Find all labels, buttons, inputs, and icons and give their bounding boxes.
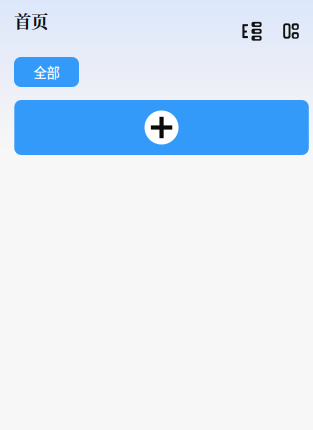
button[interactable]: Grid view (276, 16, 306, 46)
button[interactable] (14, 100, 309, 155)
button[interactable]: 全部 (14, 57, 79, 87)
staticText: 全部 (33, 62, 59, 82)
button[interactable]: Outline view (237, 16, 267, 46)
staticText: 首页 (14, 8, 48, 33)
